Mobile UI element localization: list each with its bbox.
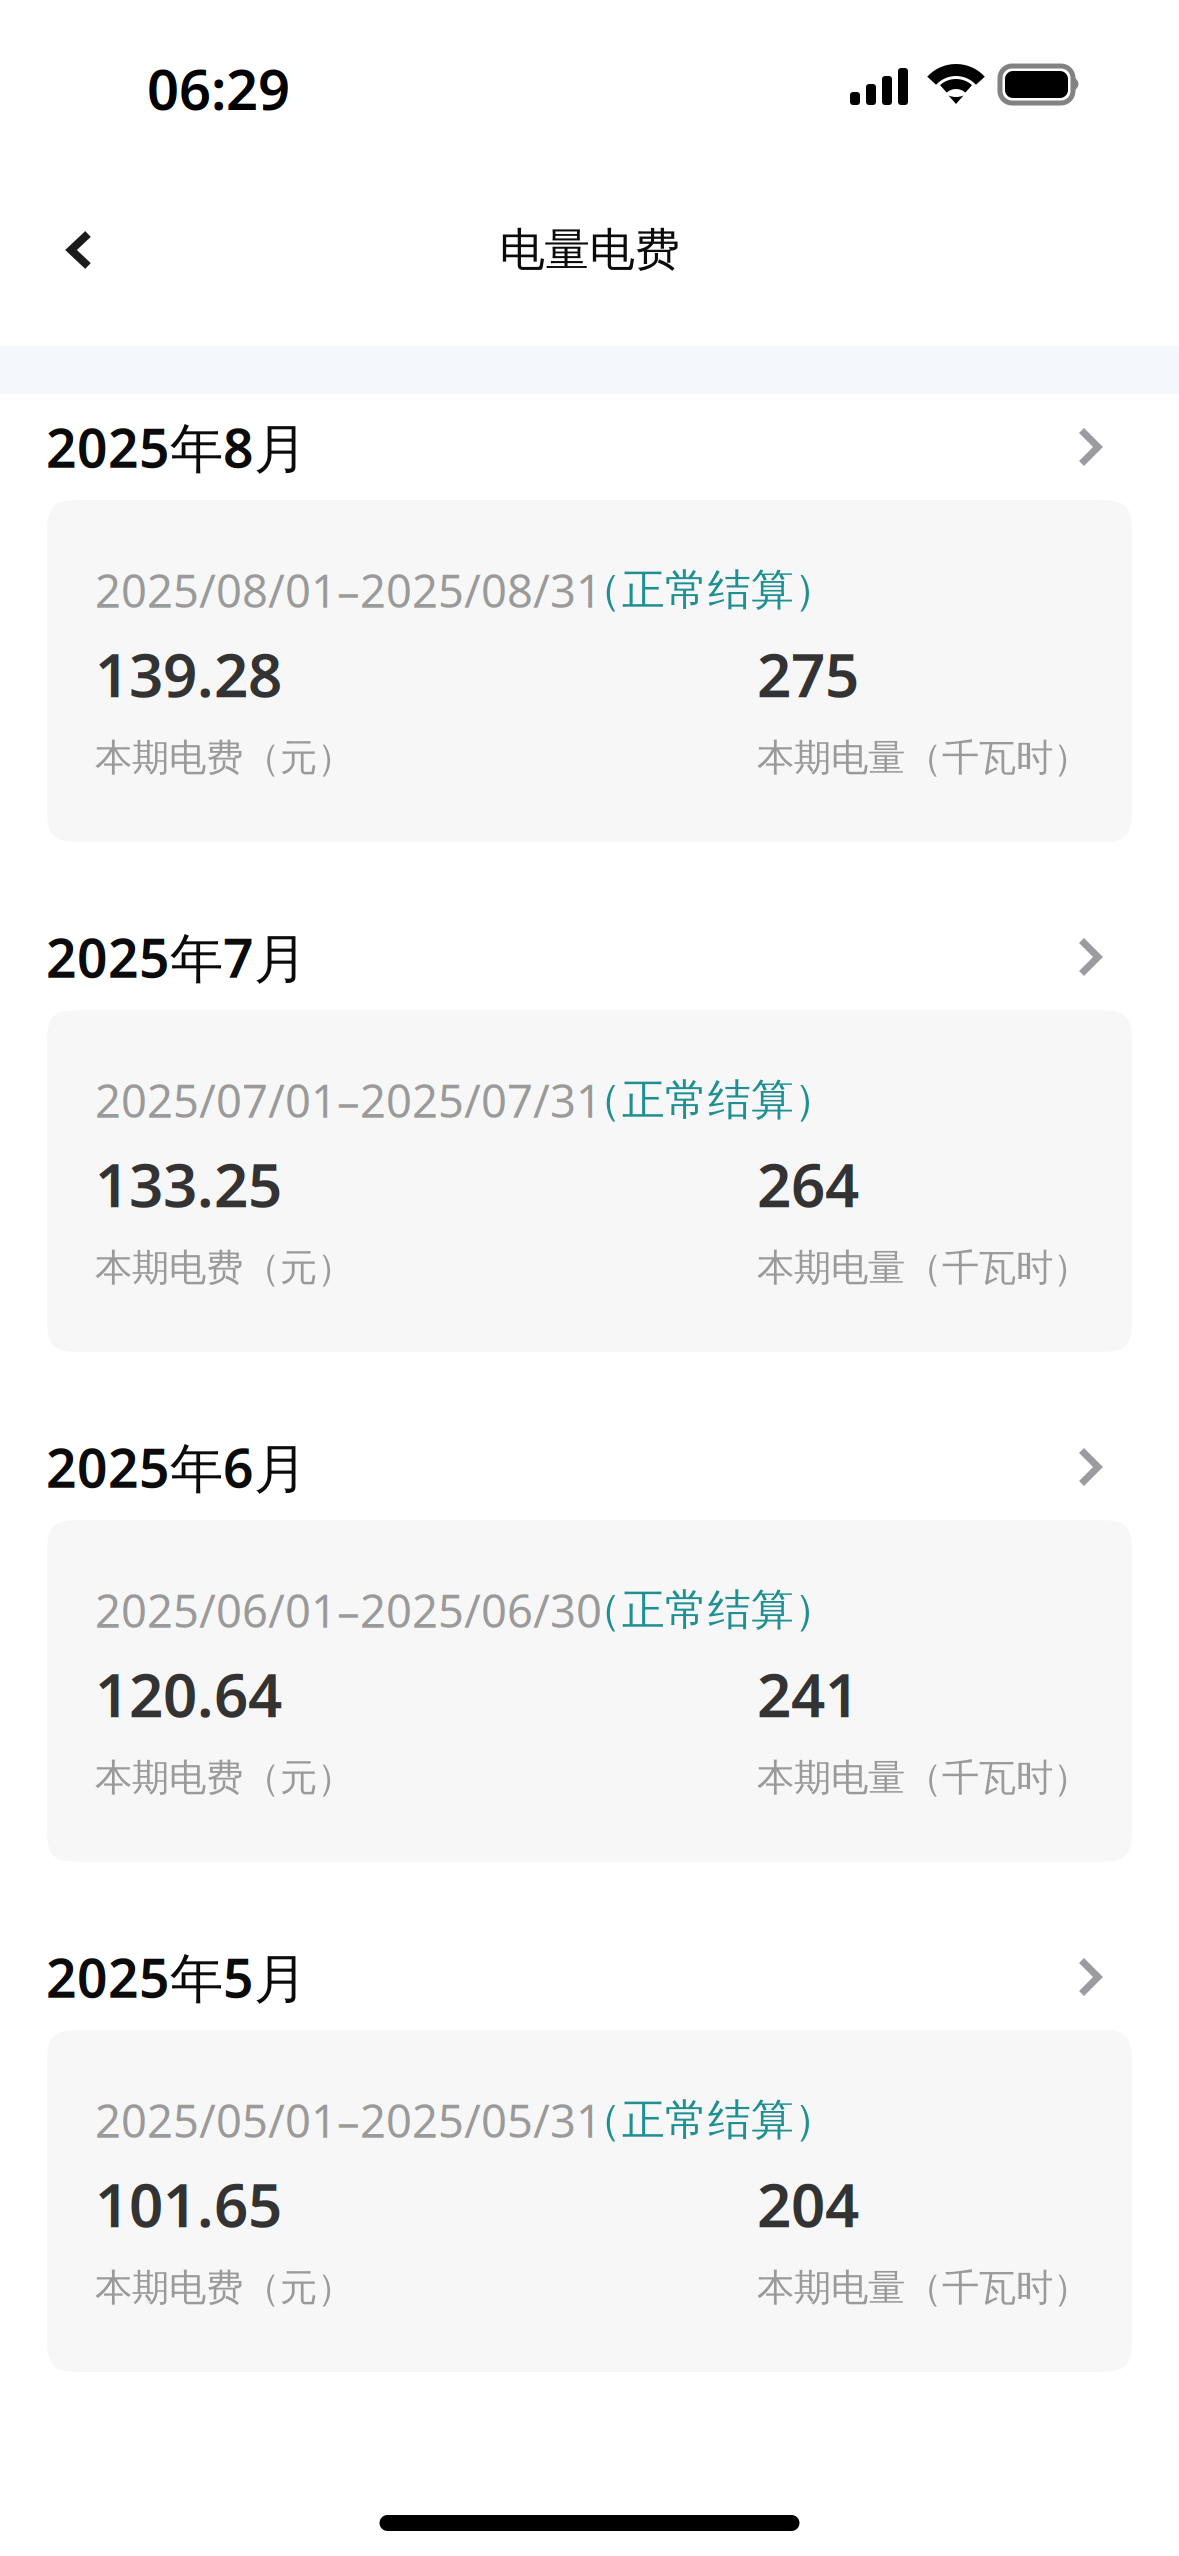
staticText: 本期电费（元）: [95, 735, 354, 781]
staticText: 本期电量（千瓦时）: [757, 2265, 1090, 2311]
staticText: 133.25: [95, 1144, 282, 1224]
button[interactable]: 2025年5月: [0, 1924, 1179, 2030]
staticText: 204: [757, 2164, 859, 2244]
button[interactable]: 2025年6月: [0, 1414, 1179, 1520]
staticText: 本期电费（元）: [95, 1245, 354, 1291]
staticText: 2025年6月: [46, 1432, 307, 1502]
staticText: 本期电量（千瓦时）: [757, 1245, 1090, 1291]
staticText: 2025/06/01–2025/06/30: [95, 1580, 602, 1640]
button[interactable]: 2025年8月: [0, 394, 1179, 500]
staticText: 2025年5月: [46, 1942, 307, 2012]
staticText: 2025年8月: [46, 412, 307, 482]
staticText: 本期电费（元）: [95, 1755, 354, 1801]
staticText: 241: [757, 1654, 859, 1734]
staticText: 275: [757, 634, 859, 714]
staticText: 2025/08/01–2025/08/31: [95, 560, 602, 620]
staticText: 120.64: [95, 1654, 282, 1734]
staticText: 139.28: [95, 634, 282, 714]
staticText: 101.65: [95, 2164, 282, 2244]
staticText: （正常结算）: [579, 2094, 837, 2146]
staticText: 电量电费: [499, 222, 679, 278]
staticText: 264: [757, 1144, 859, 1224]
staticText: 本期电费（元）: [95, 2265, 354, 2311]
staticText: （正常结算）: [579, 1584, 837, 1636]
staticText: 本期电量（千瓦时）: [757, 1755, 1090, 1801]
staticText: 2025年7月: [46, 922, 307, 992]
staticText: 2025/07/01–2025/07/31: [95, 1070, 602, 1130]
staticText: （正常结算）: [579, 1074, 837, 1126]
button[interactable]: 返回: [22, 185, 134, 315]
staticText: 本期电量（千瓦时）: [757, 735, 1090, 781]
button[interactable]: 2025年7月: [0, 904, 1179, 1010]
staticText: 2025/05/01–2025/05/31: [95, 2090, 602, 2150]
staticText: 06:29: [147, 51, 290, 125]
staticText: （正常结算）: [579, 564, 837, 616]
